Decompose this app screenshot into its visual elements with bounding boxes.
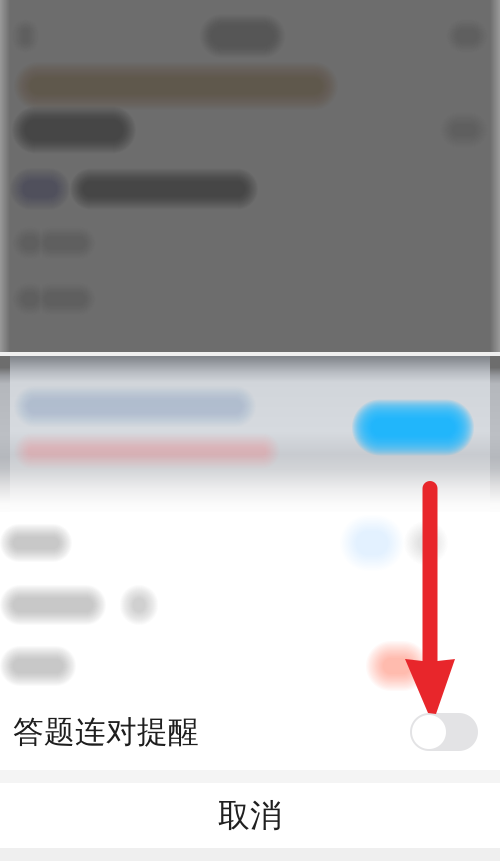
button[interactable]: 取消 bbox=[0, 783, 500, 848]
staticText: 取消 bbox=[218, 796, 282, 835]
button[interactable]: 答题连对提醒 bbox=[0, 696, 500, 768]
staticText: 答题连对提醒 bbox=[13, 713, 199, 751]
